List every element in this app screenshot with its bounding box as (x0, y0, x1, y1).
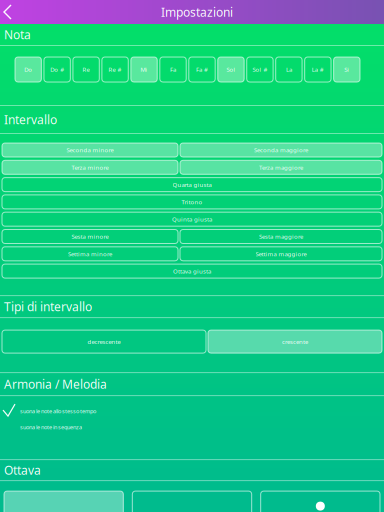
button[interactable]: suona le note allo stesso tempo (0, 403, 384, 419)
button[interactable]: Sol (218, 57, 244, 82)
staticText: Ottava giusta (173, 267, 211, 275)
staticText: Re (83, 65, 90, 74)
staticText: Sol # (252, 65, 267, 74)
staticText: Tritono (181, 198, 202, 206)
staticText: Seconda minore (66, 146, 113, 154)
button[interactable]: Re # (102, 57, 128, 82)
button[interactable]: suona le note in sequenza (0, 419, 384, 435)
staticText: Do # (50, 65, 64, 74)
button[interactable]: decrescente (2, 330, 206, 353)
staticText: Terza maggiore (259, 163, 303, 171)
staticText: La # (312, 65, 324, 74)
button[interactable]: Mi (131, 57, 157, 82)
button[interactable]: crescente (208, 330, 382, 353)
staticText: Nota (4, 26, 31, 43)
staticText: Tipi di intervallo (4, 298, 92, 315)
staticText: suona le note allo stesso tempo (20, 407, 96, 415)
staticText: decrescente (87, 337, 120, 346)
button[interactable]: Seconda minore (2, 143, 178, 157)
staticText: Quarta giusta (172, 180, 211, 189)
button[interactable]: Ottava media (132, 491, 252, 512)
button[interactable]: Quarta giusta (2, 178, 382, 192)
button[interactable]: Ottava bassa (4, 491, 123, 512)
staticText: Ottava (4, 462, 41, 478)
staticText: Settima minore (68, 250, 112, 258)
button[interactable]: Sol # (247, 57, 273, 82)
staticText: Terza minore (71, 163, 108, 171)
button[interactable]: La (276, 57, 302, 82)
button[interactable]: Indietro (0, 0, 22, 24)
staticText: Impostazioni (161, 4, 233, 20)
staticText: Fa # (196, 65, 208, 74)
staticText: Seconda maggiore (254, 146, 308, 154)
staticText: Intervallo (4, 111, 57, 128)
staticText: Sol (226, 65, 235, 74)
staticText: crescente (282, 337, 308, 346)
button[interactable]: Do (15, 57, 41, 82)
button[interactable]: Tritono (2, 195, 382, 209)
staticText: Settima maggiore (255, 250, 306, 258)
button[interactable]: Fa # (189, 57, 215, 82)
staticText: Sesta maggiore (259, 232, 303, 241)
button[interactable]: Settima maggiore (180, 247, 382, 261)
staticText: La (286, 65, 292, 74)
staticText: Fa (170, 65, 176, 74)
button[interactable]: Terza minore (2, 160, 178, 174)
staticText: Re # (109, 65, 122, 74)
button[interactable]: Fa (160, 57, 186, 82)
button[interactable]: Ottava giusta (2, 264, 382, 278)
staticText: Sesta minore (71, 232, 108, 241)
staticText: Do (24, 65, 32, 74)
button[interactable]: La # (305, 57, 331, 82)
button[interactable]: Ottava alta (261, 491, 380, 512)
button[interactable]: Sesta minore (2, 229, 178, 243)
button[interactable]: Do # (44, 57, 70, 82)
staticText: Si (344, 65, 349, 74)
button[interactable]: Quinta giusta (2, 212, 382, 226)
staticText: Mi (140, 65, 147, 74)
button[interactable]: Terza maggiore (180, 160, 382, 174)
button[interactable]: Si (334, 57, 360, 82)
button[interactable]: Seconda maggiore (180, 143, 382, 157)
button[interactable]: Sesta maggiore (180, 229, 382, 243)
button[interactable]: Re (73, 57, 99, 82)
button[interactable]: Settima minore (2, 247, 178, 261)
staticText: suona le note in sequenza (20, 423, 82, 431)
staticText: Armonia / Melodia (4, 376, 107, 392)
staticText: Quinta giusta (172, 215, 212, 223)
